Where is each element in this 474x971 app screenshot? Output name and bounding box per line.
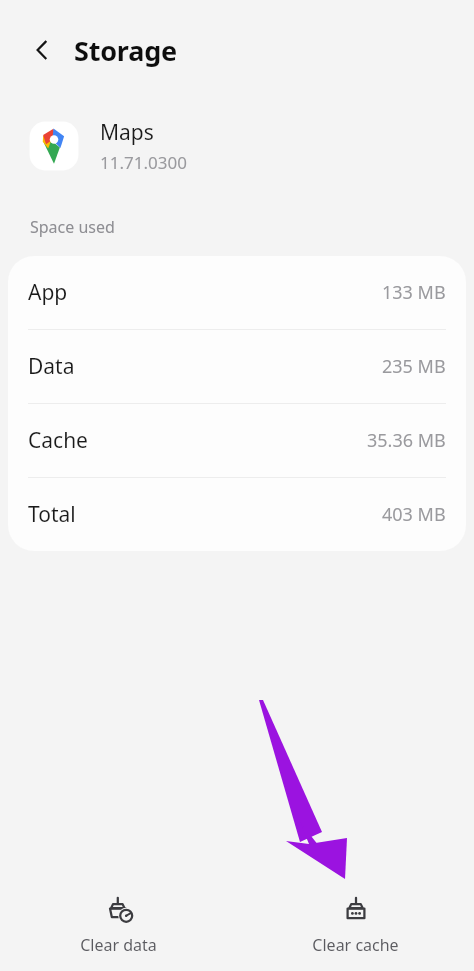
staticText: 235 MB <box>382 354 446 379</box>
button[interactable]: Total <box>8 478 466 551</box>
staticText: Data <box>28 352 75 381</box>
staticText: 11.71.0300 <box>100 151 187 174</box>
staticText: App <box>28 278 68 307</box>
button[interactable]: Clear cache <box>237 896 474 956</box>
button[interactable]: App <box>8 256 466 329</box>
staticText: Storage <box>74 32 177 69</box>
button[interactable]: Maps <box>0 100 474 192</box>
staticText: Clear cache <box>312 934 399 956</box>
button[interactable]: Cache <box>8 404 466 477</box>
staticText: 133 MB <box>382 280 446 305</box>
staticText: Cache <box>28 426 88 455</box>
staticText: Maps <box>100 118 154 147</box>
staticText: 35.36 MB <box>367 428 446 453</box>
button[interactable]: Back <box>20 28 64 72</box>
staticText: 403 MB <box>382 502 446 527</box>
button[interactable]: Data <box>8 330 466 403</box>
staticText: Total <box>28 500 76 529</box>
button[interactable]: Clear data <box>0 896 237 956</box>
staticText: Space used <box>30 216 115 238</box>
staticText: Clear data <box>80 934 157 956</box>
